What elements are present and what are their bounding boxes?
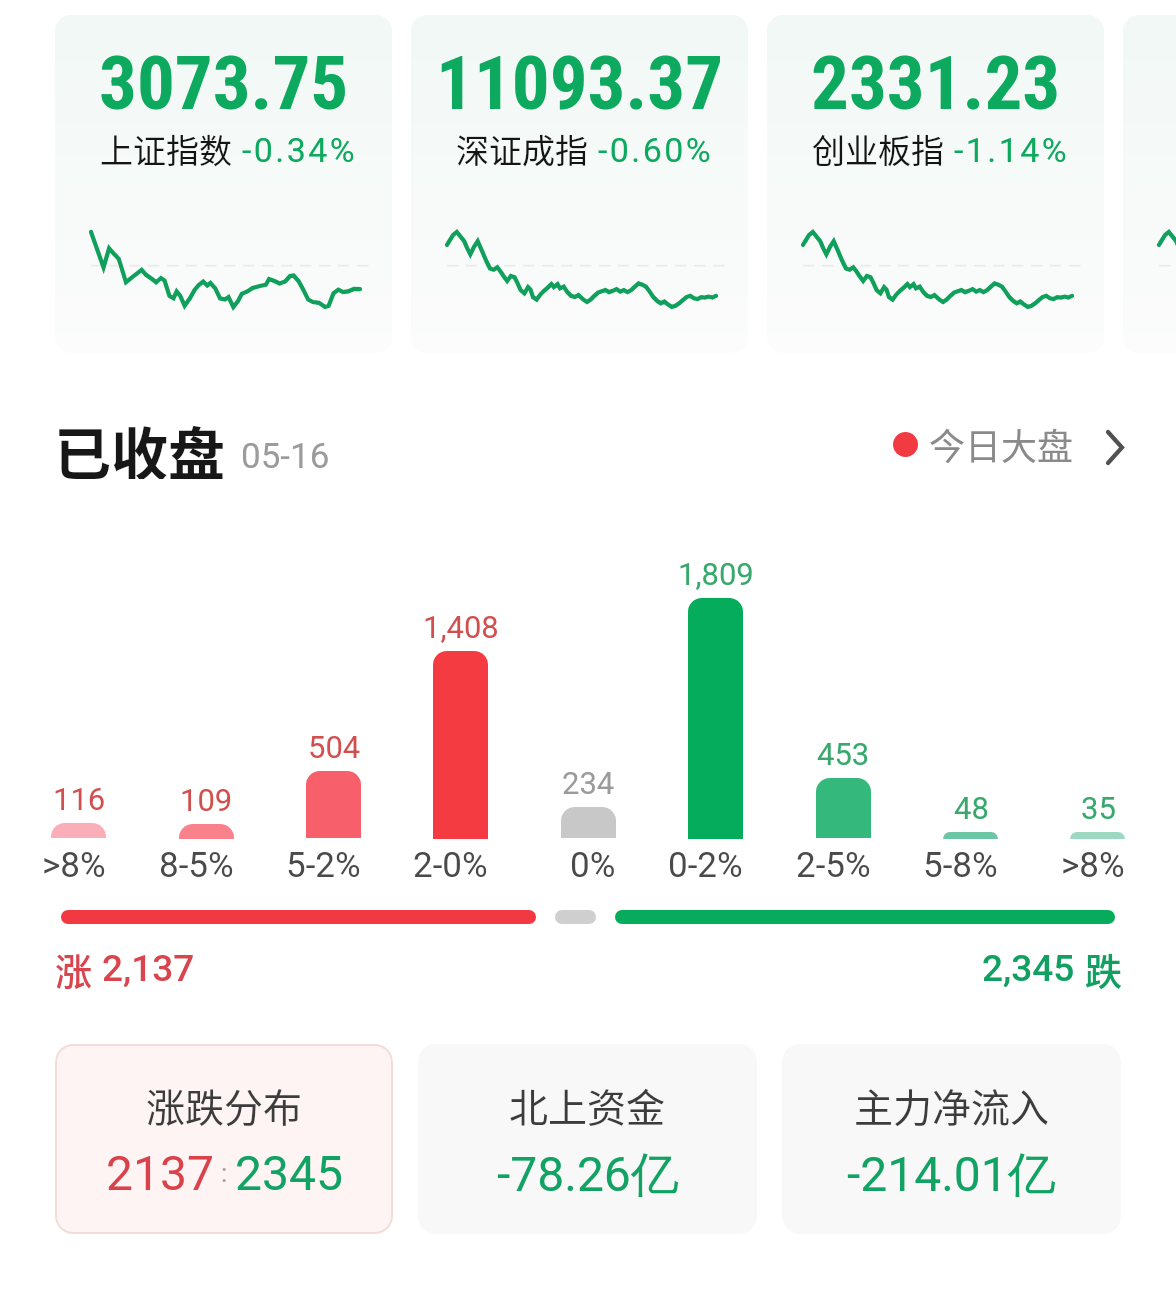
staticText: 2-5% (796, 845, 871, 886)
button[interactable]: 2331.23 (767, 15, 1104, 353)
staticText: 3073.75 (99, 39, 349, 127)
staticText: 8-5% (159, 845, 234, 886)
staticText: >8% (1061, 845, 1125, 886)
staticText: 1,809 (678, 556, 754, 592)
staticText: 涨跌分布 (146, 1077, 303, 1133)
button[interactable]: 涨跌分布 (55, 1044, 393, 1234)
staticText: >8% (42, 845, 106, 886)
staticText: 2,345 (982, 947, 1075, 990)
staticText: 109 (180, 782, 233, 818)
staticText: 已收盘 (54, 409, 225, 479)
staticText: 0% (570, 845, 616, 886)
button[interactable]: 11093.37 (411, 15, 748, 353)
staticText: 35 (1081, 790, 1116, 826)
staticText: -0.60% (598, 130, 713, 170)
staticText: 2331.23 (811, 39, 1061, 127)
staticText: 深证成指 (456, 125, 588, 173)
staticText: 234 (562, 765, 615, 801)
staticText: 05-16 (241, 436, 330, 477)
staticText: 116 (53, 781, 106, 817)
staticText: 跌 (1085, 943, 1122, 993)
staticText: 今日大盘 (929, 418, 1074, 470)
staticText: 2,137 (102, 947, 195, 990)
staticText: 453 (817, 736, 870, 772)
staticText: 48 (954, 790, 989, 826)
button[interactable]: 3073.75 (55, 15, 392, 353)
button[interactable] (1123, 15, 1176, 353)
staticText: 涨 (55, 943, 92, 993)
staticText: 北上资金 (509, 1077, 666, 1133)
staticText: -78.26亿 (497, 1145, 679, 1205)
other: 查看今日大盘 (1105, 429, 1126, 466)
staticText: -1.14% (954, 130, 1069, 170)
button[interactable]: 主力净流入 (782, 1044, 1121, 1234)
staticText: 1,408 (423, 609, 499, 645)
staticText: 上证指数 (100, 125, 232, 173)
staticText: 5-2% (286, 845, 361, 886)
button[interactable]: 北上资金 (418, 1044, 757, 1234)
button[interactable]: 今日大盘 (893, 418, 1121, 470)
staticText: 504 (308, 729, 361, 765)
staticText: 创业板指 (812, 125, 944, 173)
staticText: 2345 (235, 1145, 343, 1201)
staticText: -214.01亿 (847, 1145, 1056, 1205)
staticText: 11093.37 (436, 39, 724, 127)
staticText: 0-2% (668, 845, 743, 886)
staticText: 2-0% (413, 845, 488, 886)
staticText: -0.34% (242, 130, 357, 170)
staticText: : (221, 1158, 228, 1188)
staticText: 5-8% (923, 845, 998, 886)
staticText: 主力净流入 (854, 1077, 1050, 1133)
staticText: 2137 (106, 1145, 214, 1201)
